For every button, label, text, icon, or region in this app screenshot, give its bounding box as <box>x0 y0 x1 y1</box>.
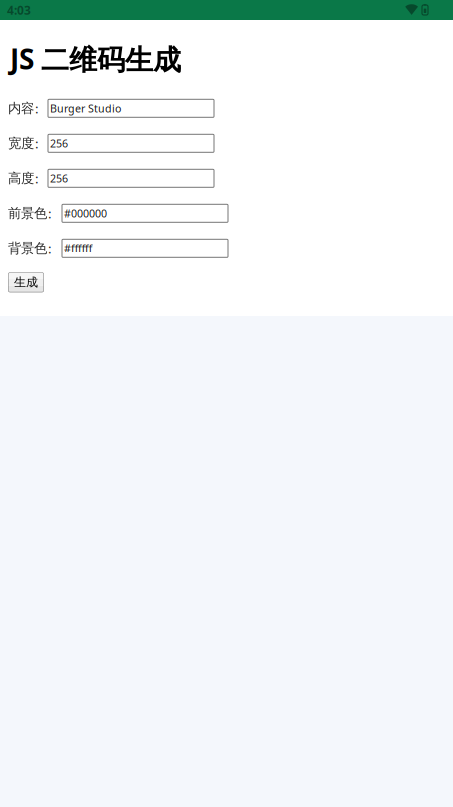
staticText: : <box>35 169 39 187</box>
staticText: : <box>48 239 52 257</box>
staticText: 背景色 <box>8 240 47 256</box>
button[interactable]: 内容 <box>48 99 214 117</box>
staticText: 256 <box>50 171 68 185</box>
staticText: : <box>48 204 52 222</box>
button[interactable]: 前景色 <box>62 204 228 222</box>
button[interactable]: 宽度 <box>48 134 214 152</box>
staticText: : <box>35 134 39 152</box>
staticText: #ffffff <box>64 241 92 255</box>
staticText: 高度 <box>8 170 34 186</box>
staticText: 前景色 <box>8 205 47 221</box>
staticText: Burger Studio <box>50 101 121 115</box>
staticText: 4:03 <box>7 2 31 18</box>
staticText: JS 二维码生成 <box>10 40 181 77</box>
staticText: 256 <box>50 136 68 150</box>
button[interactable]: 生成 <box>8 272 44 292</box>
staticText: 内容 <box>8 100 34 116</box>
button[interactable]: 背景色 <box>62 239 228 257</box>
staticText: #000000 <box>64 206 107 220</box>
staticText: : <box>35 99 39 117</box>
staticText: 生成 <box>14 275 38 290</box>
staticText: 宽度 <box>8 135 34 151</box>
button[interactable]: 高度 <box>48 169 214 187</box>
